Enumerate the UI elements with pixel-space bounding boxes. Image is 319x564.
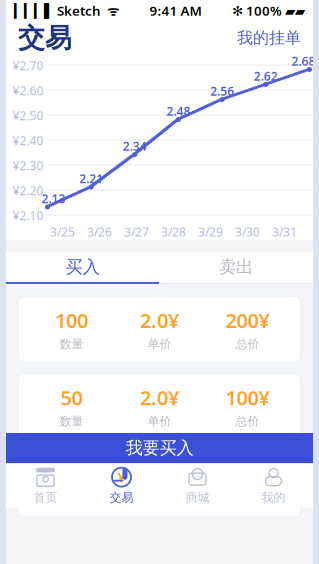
staticText: 2.21 [79,170,103,186]
staticText: ᯤ [101,2,119,19]
staticText: 交易 [18,22,72,54]
staticText: ¥2.20 [12,182,43,198]
button[interactable]: 我要买入 [6,433,313,463]
staticText: ¥2.40 [12,132,43,148]
button[interactable]: 首页 [7,464,83,508]
button[interactable]: 50 [18,373,301,440]
staticText: ✻ 100% ▰▰ [232,2,305,19]
staticText: 总价 [235,414,259,429]
button[interactable]: 我的挂单 [227,22,301,54]
staticText: 交易 [109,490,133,505]
staticText: 总价 [235,337,259,351]
staticText: ¥2.30 [12,157,43,173]
staticText: 3/28 [161,224,186,240]
button[interactable]: 买入 [6,252,159,282]
staticText: ¥2.50 [12,107,43,123]
staticText: ▎▎▎▌ Sketch [14,2,101,19]
staticText: 100 [55,307,88,334]
staticText: 200¥ [225,307,269,334]
staticText: 2.0¥ [140,307,179,334]
button[interactable]: 商城 [159,464,235,508]
staticText: 2.0¥ [140,462,179,488]
staticText: 150 [55,462,88,488]
button[interactable]: 卖出 [159,252,313,282]
staticText: 我的挂单 [237,28,301,48]
staticText: 9:41 AM [149,2,201,19]
staticText: 单价 [147,337,171,351]
staticText: ¥2.10 [12,207,43,223]
staticText: 3/27 [124,224,149,240]
staticText: 300¥ [225,462,269,488]
staticText: 2.68 [291,53,315,69]
staticText: 数量 [59,414,83,429]
staticText: 商城 [185,490,209,505]
staticText: 3/29 [198,224,223,240]
button[interactable]: ¥ [83,464,159,508]
staticText: 50 [60,384,82,411]
staticText: 我的 [261,490,285,505]
staticText: 2.56 [210,83,234,99]
staticText: 我要买入 [125,437,193,459]
button[interactable]: 150 [18,451,301,517]
staticText: ¥ [117,467,125,487]
staticText: 数量 [59,337,83,351]
staticText: 3/31 [272,224,297,240]
button[interactable]: 我的 [235,464,311,508]
staticText: 卖出 [219,256,253,278]
staticText: ¥2.60 [12,82,43,98]
staticText: 单价 [147,414,171,429]
staticText: 2.34 [123,138,147,154]
staticText: ¥2.70 [12,57,43,73]
staticText: 3/25 [50,224,75,240]
staticText: 2.13 [41,190,65,206]
staticText: 首页 [33,490,57,505]
button[interactable]: 100 [18,296,301,362]
staticText: 2.48 [166,103,190,119]
staticText: 2.62 [254,68,278,84]
staticText: 3/26 [87,224,112,240]
staticText: 买入 [65,256,99,278]
staticText: 3/30 [235,224,260,240]
staticText: 100¥ [225,384,269,411]
staticText: 2.0¥ [140,384,179,411]
